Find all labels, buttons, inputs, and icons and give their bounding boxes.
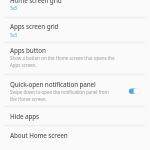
button[interactable] (0, 42, 150, 73)
staticText: Apps screen. (10, 62, 37, 68)
staticText: 5x5 (10, 5, 18, 11)
staticText: Hide apps (10, 112, 39, 121)
staticText: the Home screen. (10, 96, 47, 102)
staticText: About Home screen (10, 131, 68, 140)
button[interactable] (0, 18, 150, 41)
button[interactable] (0, 107, 150, 125)
staticText: Show a button on the Home screen that op… (10, 55, 115, 61)
staticText: Quick-open notification panel (10, 80, 96, 89)
staticText: Apps button (10, 46, 46, 55)
staticText: Home screen grid (10, 0, 62, 5)
button[interactable]: Quick-open notification panel toggle (126, 84, 144, 98)
button[interactable] (0, 0, 150, 17)
staticText: Swipe down to open the notification pane… (10, 89, 109, 95)
button[interactable] (0, 74, 150, 106)
staticText: 5x5 (10, 32, 18, 38)
button[interactable] (0, 126, 150, 146)
staticText: Apps screen grid (10, 22, 59, 31)
